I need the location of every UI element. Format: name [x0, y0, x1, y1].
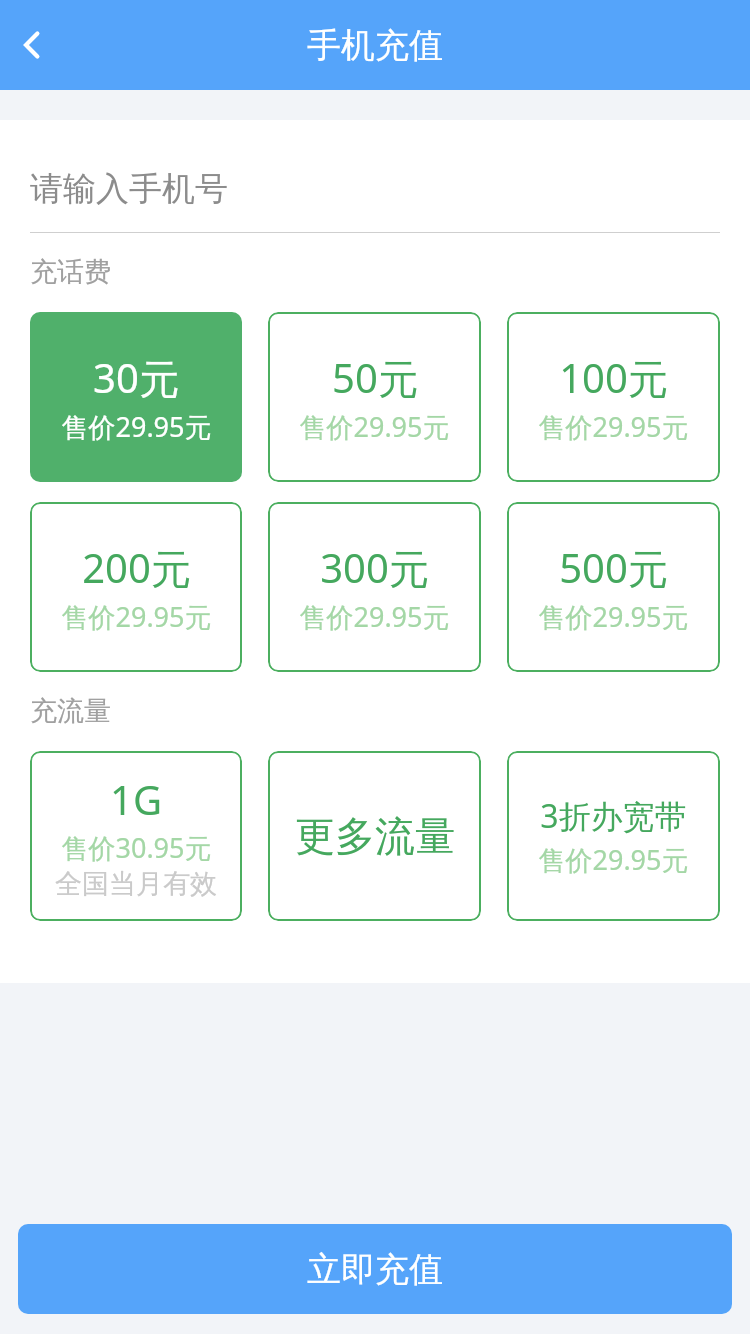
staticText: 全国当月有效 — [55, 867, 217, 901]
button[interactable]: 立即充值 — [18, 1224, 732, 1314]
button[interactable]: 3折办宽带 — [507, 751, 720, 921]
staticText: 3折办宽带 — [540, 794, 687, 838]
staticText: 售价29.95元 — [538, 841, 689, 878]
staticText: 售价29.95元 — [61, 408, 212, 445]
staticText: 售价29.95元 — [299, 408, 450, 445]
staticText: 充话费 — [30, 255, 111, 289]
staticText: 立即充值 — [307, 1248, 443, 1291]
button[interactable]: Back — [0, 13, 64, 77]
staticText: 500元 — [559, 540, 668, 595]
staticText: 售价29.95元 — [538, 408, 689, 445]
staticText: 200元 — [82, 540, 191, 595]
staticText: 更多流量 — [295, 811, 455, 861]
staticText: 售价30.95元 — [61, 829, 212, 866]
staticText: 售价29.95元 — [538, 598, 689, 635]
button[interactable]: 200元 — [30, 502, 242, 672]
button[interactable]: 30元 — [30, 312, 242, 482]
staticText: 手机充值 — [307, 24, 443, 67]
button[interactable]: 300元 — [268, 502, 481, 672]
button[interactable]: 更多流量 — [268, 751, 481, 921]
staticText: 售价29.95元 — [299, 598, 450, 635]
button[interactable]: 请输入手机号 — [30, 168, 228, 210]
staticText: 1G — [110, 772, 162, 826]
staticText: 充流量 — [30, 694, 111, 728]
staticText: 售价29.95元 — [61, 598, 212, 635]
staticText: 30元 — [93, 350, 179, 405]
button[interactable]: 500元 — [507, 502, 720, 672]
staticText: 300元 — [320, 540, 429, 595]
button[interactable]: 1G — [30, 751, 242, 921]
staticText: 100元 — [559, 350, 668, 405]
staticText: 50元 — [332, 350, 418, 405]
button[interactable]: 100元 — [507, 312, 720, 482]
button[interactable]: 50元 — [268, 312, 481, 482]
